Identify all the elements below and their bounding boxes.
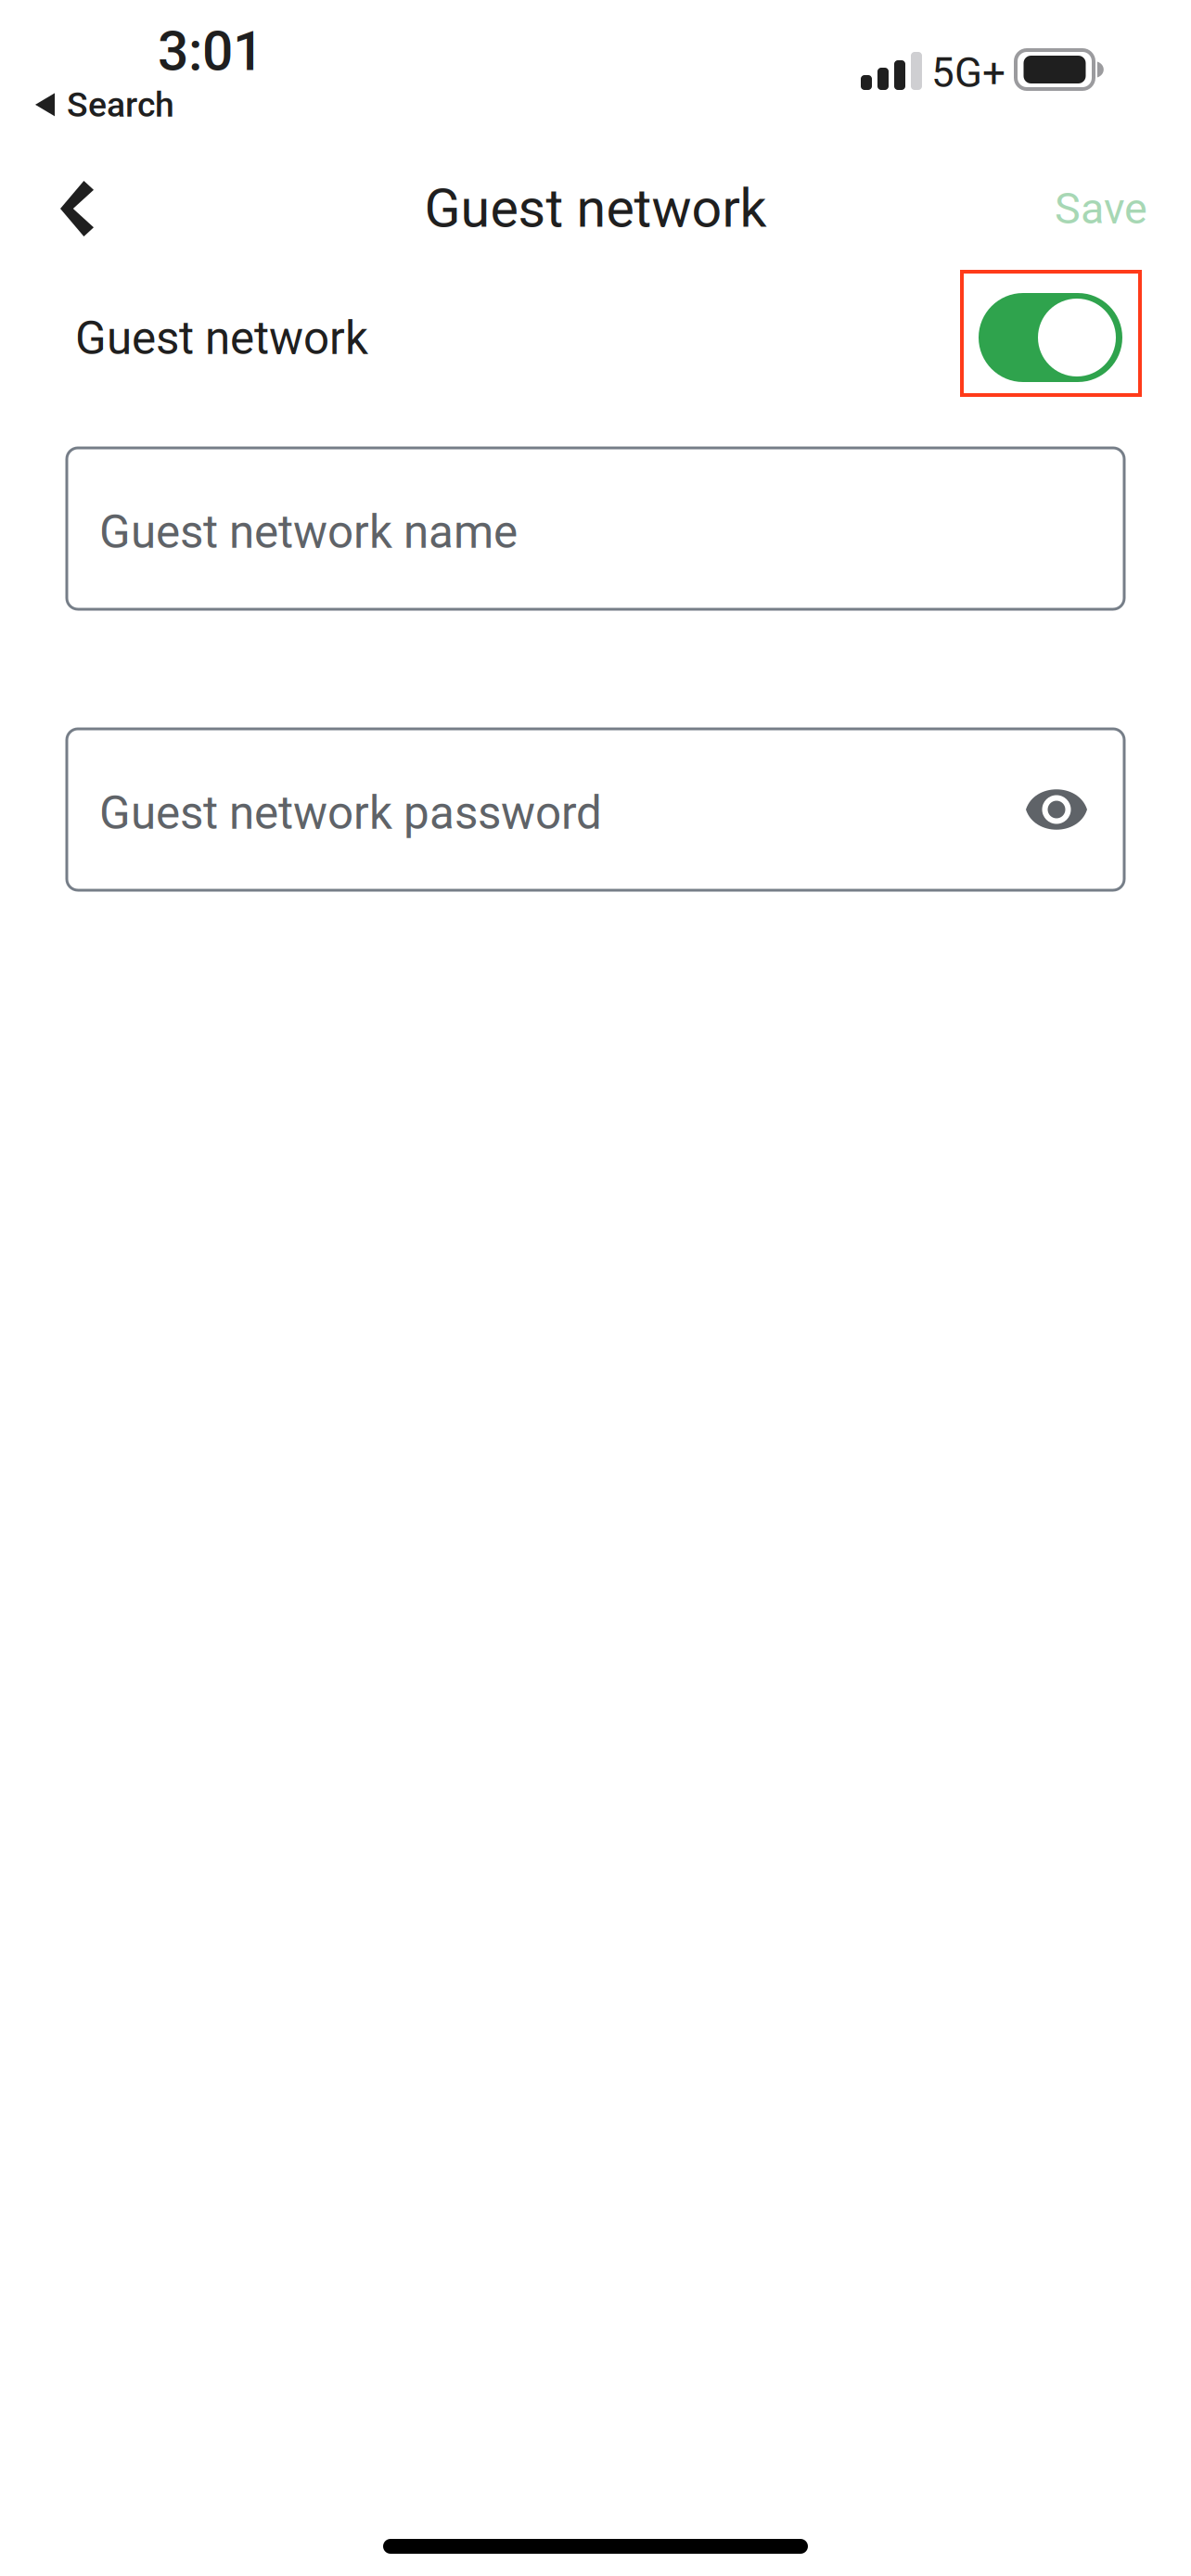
staticText: Search [67, 84, 174, 125]
staticText: Guest network [424, 177, 767, 240]
button[interactable]: Guest network password [0, 729, 1191, 890]
button[interactable]: Save [1018, 156, 1159, 262]
staticText: 3:01 [158, 19, 263, 83]
button[interactable]: Guest network [962, 263, 1140, 395]
staticText: Save [1055, 183, 1147, 234]
button[interactable]: Back [32, 157, 122, 261]
staticText: 5G+ [931, 49, 1005, 97]
staticText: Guest network password [99, 786, 602, 840]
button[interactable]: Guest network name [0, 448, 1191, 609]
staticText: Guest network name [99, 505, 518, 559]
staticText: Guest network [75, 312, 368, 365]
button[interactable]: Back to Search [0, 0, 174, 130]
